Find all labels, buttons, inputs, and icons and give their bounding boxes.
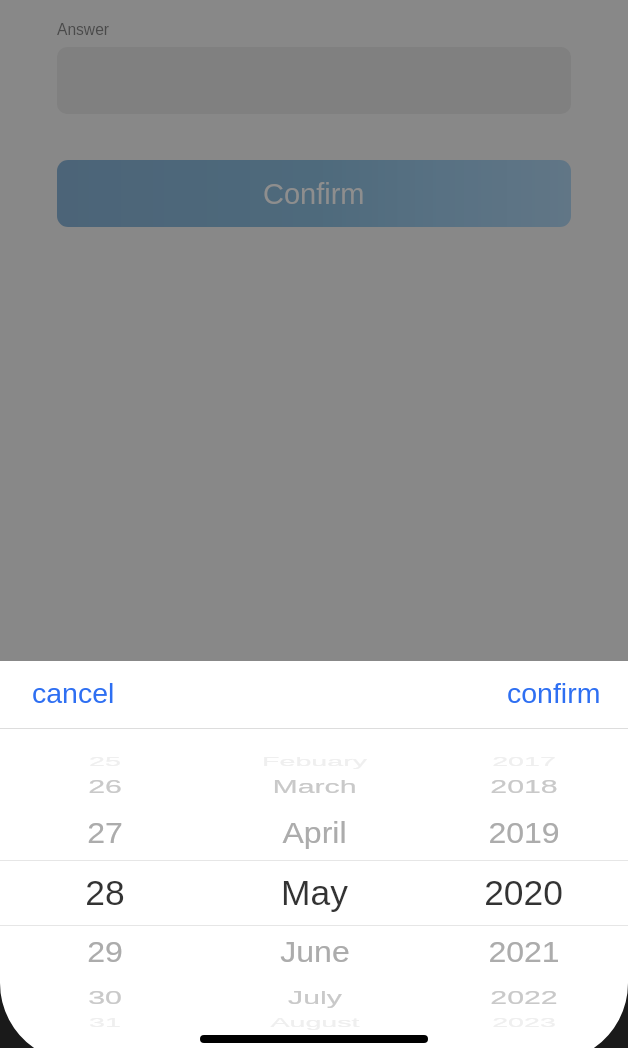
button[interactable]: August bbox=[210, 1016, 419, 1030]
staticText: 2022 bbox=[490, 987, 558, 1009]
staticText: 28 bbox=[85, 873, 125, 913]
button[interactable]: 27 bbox=[0, 816, 210, 850]
button[interactable]: 31 bbox=[0, 1016, 210, 1030]
staticText: 2017 bbox=[492, 755, 556, 769]
other: Home bbox=[0, 1035, 628, 1043]
staticText: 29 bbox=[87, 935, 123, 969]
staticText: 2021 bbox=[488, 935, 560, 969]
button[interactable]: 29 bbox=[0, 935, 210, 969]
button[interactable]: 2020 bbox=[419, 873, 628, 913]
button[interactable]: 30 bbox=[0, 987, 210, 1009]
button[interactable]: 28 bbox=[0, 873, 210, 913]
staticText: March bbox=[272, 776, 357, 798]
staticText: Febuary bbox=[262, 755, 367, 769]
button[interactable]: March bbox=[210, 776, 419, 798]
staticText: Confirm bbox=[263, 178, 365, 210]
staticText: confirm bbox=[507, 677, 601, 709]
staticText: cancel bbox=[32, 677, 115, 709]
staticText: 2020 bbox=[484, 873, 563, 913]
staticText: 25 bbox=[89, 755, 121, 769]
button[interactable]: July bbox=[210, 987, 419, 1009]
staticText: July bbox=[288, 987, 342, 1009]
button[interactable]: Febuary bbox=[210, 755, 419, 769]
button[interactable]: 2021 bbox=[419, 935, 628, 969]
staticText: Answer bbox=[57, 21, 109, 38]
button[interactable]: 2023 bbox=[419, 1016, 628, 1030]
button[interactable]: 2022 bbox=[419, 987, 628, 1009]
button[interactable]: confirm bbox=[483, 661, 628, 728]
staticText: 2023 bbox=[492, 1016, 556, 1030]
button[interactable]: cancel bbox=[0, 661, 139, 728]
staticText: 26 bbox=[88, 776, 122, 798]
button[interactable]: May bbox=[210, 873, 419, 913]
button[interactable]: 2019 bbox=[419, 816, 628, 850]
button[interactable]: 2018 bbox=[419, 776, 628, 798]
button[interactable]: June bbox=[210, 935, 419, 969]
staticText: May bbox=[281, 873, 348, 913]
staticText: 2018 bbox=[490, 776, 558, 798]
staticText: 30 bbox=[88, 987, 122, 1009]
staticText: August bbox=[270, 1016, 360, 1030]
button[interactable]: April bbox=[210, 816, 419, 850]
button[interactable]: 26 bbox=[0, 776, 210, 798]
staticText: April bbox=[282, 816, 347, 850]
staticText: 2019 bbox=[488, 816, 560, 850]
staticText: 31 bbox=[89, 1016, 121, 1030]
staticText: 27 bbox=[87, 816, 123, 850]
button[interactable]: Confirm bbox=[57, 160, 571, 227]
button[interactable]: 2017 bbox=[419, 755, 628, 769]
staticText: June bbox=[280, 935, 350, 969]
